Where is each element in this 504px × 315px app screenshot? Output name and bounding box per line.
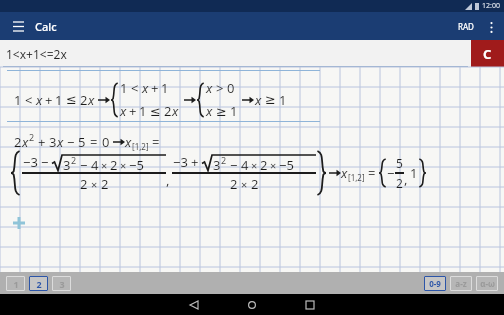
staticText: 2 (71, 154, 77, 166)
staticText: = (152, 133, 160, 151)
staticText: 12:00 (482, 1, 500, 11)
staticText: 2 (101, 175, 109, 193)
staticText: × (101, 158, 108, 173)
staticText: − (80, 156, 88, 174)
staticText: ≤ (150, 104, 161, 119)
button[interactable]: Add expression (11, 215, 27, 231)
staticText: 2 (230, 175, 238, 193)
staticText: 2 (80, 175, 88, 193)
staticText: × (120, 158, 127, 173)
staticText: 1 (410, 164, 418, 182)
staticText: a-z (455, 278, 467, 289)
staticText: 3 (63, 156, 71, 174)
staticText: − (41, 153, 49, 171)
staticText: ≥ (265, 92, 276, 107)
button[interactable]: 1 (6, 276, 25, 291)
staticText: , (404, 170, 408, 188)
button[interactable]: Recent apps (293, 294, 327, 315)
staticText: x (255, 91, 262, 109)
staticText: 5 (78, 133, 86, 151)
staticText: 2 (396, 175, 403, 191)
button[interactable]: C (471, 40, 504, 67)
staticText: < (131, 79, 139, 97)
staticText: 2 (36, 278, 42, 290)
staticText: x (88, 91, 95, 109)
staticText: x (22, 133, 29, 151)
staticText: − (387, 164, 395, 182)
staticText: 2 (29, 131, 35, 143)
staticText: + (129, 102, 137, 120)
staticText: < (25, 91, 33, 109)
staticText: x (36, 91, 43, 109)
staticText: 2 (260, 156, 268, 174)
staticText: 2 (80, 91, 88, 109)
staticText: −5 (279, 156, 294, 174)
staticText: 1 (120, 79, 128, 97)
staticText: −5 (129, 156, 144, 174)
staticText: x (172, 102, 179, 120)
staticText: = (90, 133, 98, 151)
button[interactable]: RAD (454, 17, 478, 36)
staticText: 5 (396, 155, 403, 171)
staticText: − (230, 156, 238, 174)
staticText: 2 (221, 154, 227, 166)
staticText: 2 (110, 156, 118, 174)
staticText: 3 (59, 278, 65, 290)
staticText: × (91, 177, 98, 192)
staticText: −3 (173, 153, 188, 171)
staticText: , (166, 171, 170, 189)
staticText: > (216, 79, 224, 97)
button[interactable]: More options (482, 18, 500, 36)
staticText: 1 (55, 91, 63, 109)
staticText: Calc (35, 19, 57, 34)
staticText: 3 (49, 133, 57, 151)
staticText: 3 (213, 156, 221, 174)
staticText: [1,2] (348, 172, 365, 183)
staticText: RAD (458, 21, 474, 32)
staticText: x (120, 102, 127, 120)
staticText: + (151, 79, 159, 97)
staticText: 4 (91, 156, 99, 174)
staticText: −3 (23, 153, 38, 171)
staticText: C (483, 45, 492, 63)
staticText: 1 (279, 91, 287, 109)
staticText: ≥ (216, 104, 227, 119)
staticText: 2 (164, 102, 172, 120)
button[interactable]: 3 (52, 276, 71, 291)
staticText: 2 (14, 133, 22, 151)
staticText: 0 (102, 133, 110, 151)
button[interactable]: Back (177, 294, 211, 315)
staticText: 0-9 (429, 278, 441, 289)
staticText: x (57, 133, 64, 151)
staticText: × (270, 158, 277, 173)
button[interactable]: α-ω (476, 276, 498, 291)
button[interactable]: 1<x+1<=2x (0, 40, 471, 67)
staticText: x (341, 164, 348, 182)
staticText: + (38, 133, 46, 151)
staticText: − (67, 133, 75, 151)
staticText: 1 (230, 102, 238, 120)
button[interactable]: 2 (29, 276, 48, 291)
staticText: x (142, 79, 149, 97)
staticText: 0 (227, 79, 235, 97)
button[interactable]: Home (235, 294, 269, 315)
staticText: 1 (161, 79, 169, 97)
staticText: × (241, 177, 248, 192)
staticText: 1 (14, 91, 22, 109)
staticText: [1,2] (132, 141, 149, 152)
staticText: α-ω (480, 278, 495, 289)
staticText: × (251, 158, 258, 173)
staticText: x (125, 133, 132, 151)
staticText: 1<x+1<=2x (6, 46, 67, 62)
staticText: + (45, 91, 53, 109)
staticText: 1 (13, 278, 19, 290)
staticText: x (206, 79, 213, 97)
button[interactable]: a-z (450, 276, 472, 291)
staticText: x (206, 102, 213, 120)
button[interactable]: Open navigation menu (9, 17, 27, 35)
staticText: + (191, 153, 199, 171)
button[interactable]: 0-9 (424, 276, 446, 291)
staticText: 4 (241, 156, 249, 174)
staticText: ≤ (66, 92, 77, 107)
staticText: 2 (251, 175, 259, 193)
